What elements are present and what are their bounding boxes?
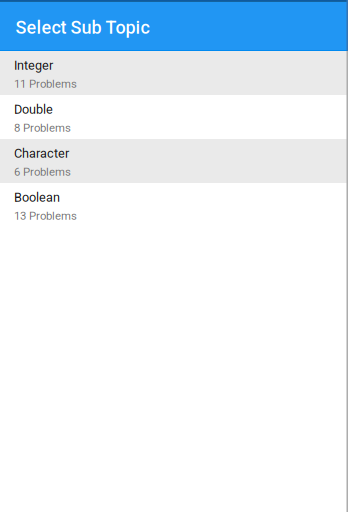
staticText: Boolean <box>14 190 60 205</box>
staticText: Double <box>14 102 53 117</box>
staticText: Integer <box>14 58 53 73</box>
staticText: 8 Problems <box>14 121 71 135</box>
button[interactable]: Boolean <box>0 183 348 227</box>
staticText: 11 Problems <box>14 77 77 91</box>
staticText: 6 Problems <box>14 165 71 179</box>
button[interactable]: Integer <box>0 51 348 95</box>
button[interactable]: Character <box>0 139 348 183</box>
staticText: 13 Problems <box>14 209 77 223</box>
button[interactable]: Double <box>0 95 348 139</box>
staticText: Select Sub Topic <box>15 17 149 38</box>
staticText: Character <box>14 146 69 161</box>
